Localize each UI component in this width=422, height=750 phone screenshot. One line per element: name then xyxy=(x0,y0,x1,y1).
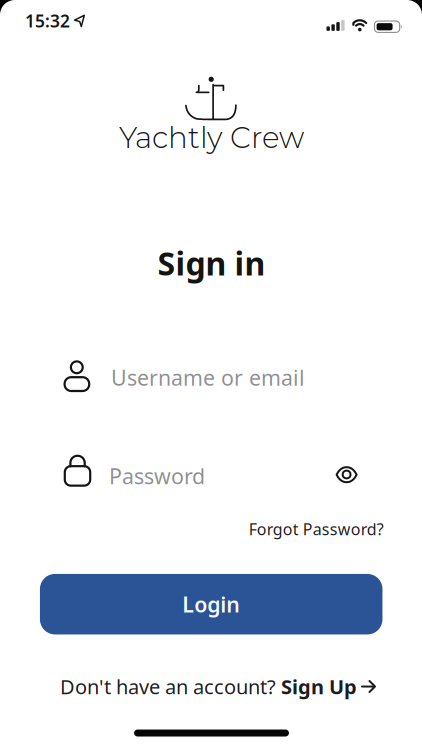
staticText: Forgot Password? xyxy=(249,518,384,540)
staticText: Sign in xyxy=(157,242,265,284)
button[interactable] xyxy=(333,463,361,487)
staticText: Username or email xyxy=(111,363,305,392)
staticText: Don't have an account? xyxy=(60,673,276,700)
button[interactable]: Username or email xyxy=(60,353,390,399)
staticText: Yachtly Crew xyxy=(119,120,304,155)
staticText: Login xyxy=(182,590,240,618)
button[interactable]: Password xyxy=(60,451,390,501)
button[interactable]: Login xyxy=(40,574,382,634)
staticText: Password xyxy=(109,462,205,490)
staticText: Sign Up xyxy=(281,673,357,700)
button[interactable]: Don't have an account? xyxy=(60,673,376,700)
button[interactable]: Forgot Password? xyxy=(249,518,384,540)
staticText: 15:32 xyxy=(25,9,70,32)
